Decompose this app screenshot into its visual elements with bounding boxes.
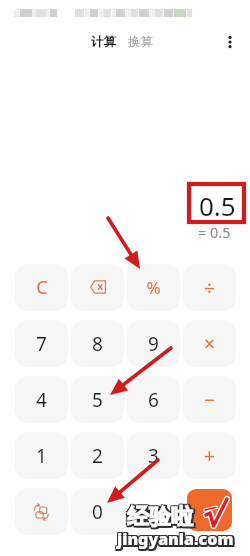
staticText: C — [36, 275, 48, 300]
staticText: jingyanla.com — [116, 527, 233, 549]
button[interactable]: C — [15, 264, 68, 311]
staticText: 3 — [148, 443, 159, 469]
staticText: % — [146, 276, 161, 299]
staticText: 计算 — [91, 34, 116, 50]
staticText: jingyanla.com — [116, 528, 233, 550]
button[interactable]: % — [127, 264, 180, 311]
staticText: jingyanla.com — [116, 530, 233, 552]
button[interactable]: 3 — [127, 432, 180, 479]
button[interactable]: − — [183, 376, 236, 423]
button[interactable]: 0 — [71, 488, 124, 535]
staticText: 经验啦 — [129, 502, 195, 530]
staticText: 7 — [36, 331, 47, 357]
staticText: jingyanla.com — [119, 530, 236, 552]
staticText: ÷ — [204, 275, 215, 301]
staticText: 经验啦 — [126, 505, 192, 533]
staticText: 9 — [148, 331, 159, 357]
staticText: 8 — [92, 331, 103, 357]
button[interactable]: 7 — [15, 320, 68, 367]
button[interactable]: 2 — [71, 432, 124, 479]
staticText: = 0.5 — [198, 222, 231, 239]
button[interactable]: Unit convert — [15, 488, 68, 535]
staticText: jingyanla.com — [117, 527, 234, 549]
button[interactable]: 8 — [71, 320, 124, 367]
staticText: jingyanla.com — [117, 528, 234, 550]
staticText: 经验啦 — [129, 503, 195, 531]
staticText: 6 — [148, 387, 159, 413]
button[interactable]: 计算 — [88, 29, 119, 55]
staticText: 经验啦 — [127, 503, 193, 531]
staticText: 经验啦 — [127, 502, 193, 530]
staticText: jingyanla.com — [117, 530, 234, 552]
button[interactable]: More options — [216, 28, 244, 56]
staticText: + — [204, 443, 215, 469]
staticText: 0.5 — [199, 188, 236, 218]
staticText: 0 — [92, 499, 103, 525]
button[interactable]: ÷ — [183, 264, 236, 311]
button[interactable]: Backspace — [71, 264, 124, 311]
staticText: − — [204, 387, 215, 413]
staticText: 经验啦 — [126, 503, 192, 531]
staticText: 经验啦 — [126, 502, 192, 530]
button[interactable]: + — [183, 432, 236, 479]
staticText: 换算 — [128, 34, 153, 50]
staticText: 5 — [92, 387, 103, 413]
staticText: jingyanla.com — [119, 528, 236, 550]
button[interactable]: 4 — [15, 376, 68, 423]
button[interactable]: × — [183, 320, 236, 367]
staticText: 4 — [36, 387, 47, 413]
button[interactable]: 9 — [127, 320, 180, 367]
button[interactable]: 换算 — [125, 29, 156, 55]
staticText: 1 — [36, 443, 47, 469]
staticText: jingyanla.com — [119, 527, 236, 549]
staticText: 经验啦 — [129, 505, 195, 533]
button[interactable]: 6 — [127, 376, 180, 423]
button[interactable]: 1 — [15, 432, 68, 479]
staticText: × — [204, 331, 215, 357]
staticText: 2 — [92, 443, 103, 469]
button[interactable]: 5 — [71, 376, 124, 423]
staticText: 经验啦 — [127, 505, 193, 533]
